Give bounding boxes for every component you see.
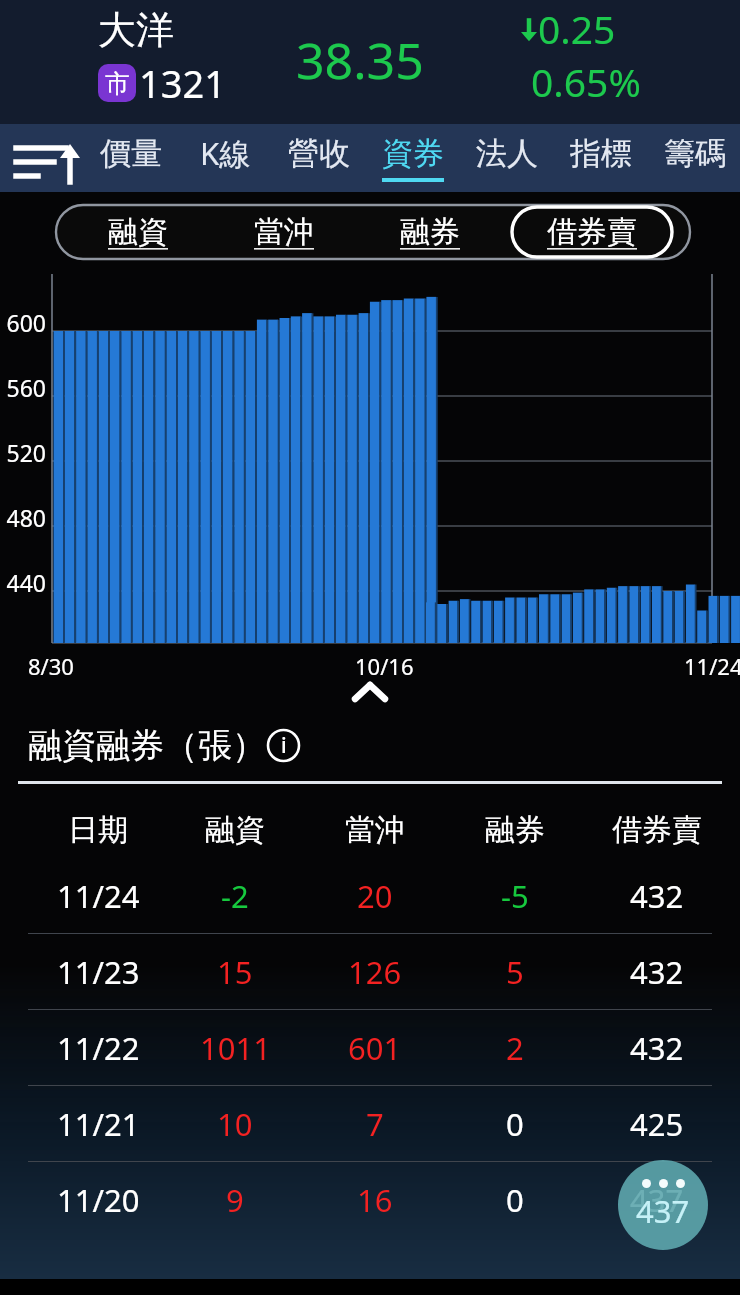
staticText: 601 [348,1027,402,1069]
staticText: 10/16 [355,651,414,681]
staticText: 日期 [68,811,128,849]
staticText: 9 [226,1179,244,1221]
staticText: 資券 [382,134,444,173]
staticText: 11/24 [684,651,740,681]
staticText: 15 [217,951,253,993]
staticText: 5 [506,951,524,993]
staticText: 價量 [100,134,162,173]
staticText: 1321 [139,57,226,109]
staticText: 560 [0,372,46,403]
staticText: 2 [506,1027,524,1069]
staticText: 0 [506,1103,524,1145]
staticText: 11/24 [57,875,140,917]
staticText: 600 [0,307,46,338]
staticText: 指標 [570,134,632,173]
button[interactable]: 融資融券（張） [28,724,301,767]
button[interactable]: K線 [178,124,272,192]
staticText: 7 [366,1103,384,1145]
button[interactable]: 11/22 [0,1010,740,1085]
button[interactable]: 價量 [84,124,178,192]
staticText: 8/30 [28,651,74,681]
staticText: 籌碼 [664,134,726,173]
button[interactable]: 指標 [554,124,648,192]
staticText: 融資融券（張） [28,724,266,767]
staticText: 10 [217,1103,253,1145]
staticText: 11/21 [57,1103,140,1145]
button[interactable]: 借券賣 [512,207,672,257]
staticText: 432 [630,951,684,993]
staticText: 20 [357,875,393,917]
button[interactable]: 11/20 [0,1162,740,1237]
button[interactable]: 法人 [460,124,554,192]
button[interactable]: 融券 [366,207,494,257]
staticText: -5 [501,875,529,917]
staticText: 425 [630,1103,684,1145]
button[interactable]: 11/21 [0,1086,740,1161]
button[interactable]: 籌碼 [648,124,740,192]
staticText: 440 [0,567,46,598]
button[interactable]: 融資 [74,207,202,257]
staticText: 借券賣 [612,811,702,849]
staticText: 432 [630,1027,684,1069]
staticText: 市 [105,68,130,99]
button[interactable]: 11/24 [0,858,740,933]
staticText: 480 [0,502,46,533]
staticText: -2 [221,875,249,917]
button[interactable]: 11/23 [0,934,740,1009]
button[interactable]: 資券 [366,124,460,192]
staticText: 16 [357,1179,393,1221]
staticText: 11/23 [57,951,140,993]
staticText: 437 [630,1179,684,1221]
staticText: 融資 [205,811,265,849]
staticText: 520 [0,437,46,468]
button[interactable]: Sort [0,124,84,192]
staticText: 0 [506,1179,524,1221]
staticText: 1011 [200,1027,271,1069]
staticText: 當沖 [345,811,405,849]
staticText: 營收 [288,134,350,173]
staticText: 126 [348,951,402,993]
staticText: K線 [200,132,251,174]
staticText: 11/20 [57,1179,140,1221]
staticText: 融券 [485,811,545,849]
staticText: 437 [636,1190,690,1232]
staticText: 融資 [108,213,168,251]
staticText: 11/22 [57,1027,140,1069]
staticText: 0.65% [531,55,641,108]
button[interactable]: 當沖 [220,207,348,257]
button[interactable]: 營收 [272,124,366,192]
staticText: 當沖 [254,213,314,251]
staticText: 432 [630,875,684,917]
staticText: 0.25 [538,2,616,55]
staticText: 借券賣 [547,213,637,251]
staticText: i [281,731,287,760]
button[interactable]: Collapse chart [0,674,740,710]
staticText: 38.35 [296,26,424,94]
staticText: 法人 [476,134,538,173]
staticText: 大洋 [98,6,174,54]
staticText: 融券 [400,213,460,251]
button[interactable]: More options 437 [618,1160,708,1250]
